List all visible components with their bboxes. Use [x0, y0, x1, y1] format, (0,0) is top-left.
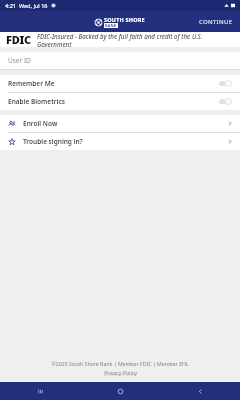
button[interactable]: Enroll Now [0, 115, 240, 132]
staticText: Privacy Policy [104, 369, 137, 376]
staticText: SOUTH SHORE [104, 16, 145, 23]
staticText: FDIC [6, 32, 31, 47]
button[interactable]: Remember Me [0, 75, 240, 92]
staticText: BANK [105, 23, 117, 28]
staticText: Enroll Now [23, 119, 228, 128]
staticText: User ID [8, 56, 31, 65]
staticText: Wed, Jul 16 [19, 2, 48, 9]
staticText: CONTINUE [199, 18, 233, 26]
button[interactable]: CONTINUE [192, 14, 240, 30]
button[interactable]: User ID [0, 52, 240, 69]
button[interactable]: Home [80, 382, 160, 400]
button[interactable]: Recent apps [0, 382, 80, 400]
staticText: ©2025 South Shore Bank | Member FDIC | M… [51, 360, 189, 367]
staticText: FDIC-Insured - Backed by the full faith … [37, 32, 234, 47]
staticText: 4:21 [5, 2, 16, 9]
staticText: Trouble signing in? [23, 137, 228, 146]
button[interactable]: Back [160, 382, 240, 400]
button[interactable]: Enable Biometrics [0, 93, 240, 110]
staticText: Enable Biometrics [8, 97, 219, 106]
staticText: Remember Me [8, 79, 219, 88]
button[interactable]: Privacy Policy [104, 369, 137, 376]
button[interactable]: Trouble signing in? [0, 133, 240, 150]
